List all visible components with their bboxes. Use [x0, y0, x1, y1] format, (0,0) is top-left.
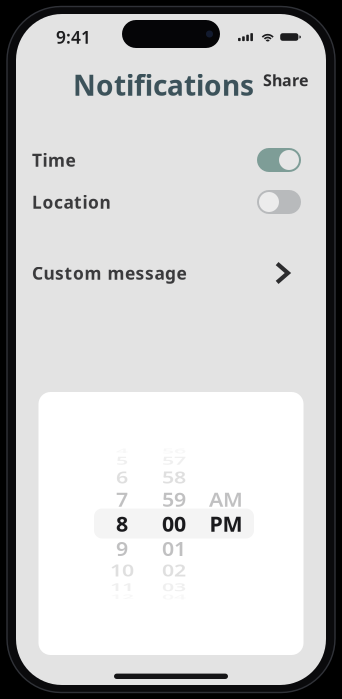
staticText: 4: [116, 436, 128, 465]
staticText: 59: [162, 485, 186, 513]
button[interactable]: Share: [260, 66, 312, 94]
staticText: 11: [110, 573, 134, 601]
staticText: 04: [162, 582, 186, 611]
staticText: Share: [263, 69, 309, 91]
staticText: 57: [162, 446, 186, 474]
staticText: 02: [162, 556, 186, 584]
staticText: 03: [162, 573, 186, 601]
staticText: 8: [116, 509, 128, 538]
staticText: 5: [116, 446, 128, 474]
staticText: 12: [110, 582, 134, 611]
staticText: 7: [116, 485, 128, 513]
staticText: 58: [162, 463, 186, 491]
staticText: 9: [116, 534, 128, 562]
staticText: AM: [209, 485, 243, 513]
staticText: 56: [162, 436, 186, 465]
staticText: Time: [32, 148, 75, 171]
staticText: 9:41: [56, 25, 91, 48]
button[interactable]: Location: [16, 187, 326, 217]
button[interactable]: Time: [16, 145, 326, 175]
button[interactable]: Custom message: [16, 258, 326, 288]
staticText: Custom message: [32, 261, 186, 284]
staticText: 01: [162, 534, 186, 562]
staticText: Notifications: [73, 66, 254, 104]
staticText: 6: [116, 463, 128, 491]
staticText: Location: [32, 190, 110, 213]
staticText: 10: [110, 556, 134, 584]
staticText: 00: [162, 509, 186, 538]
staticText: PM: [209, 509, 242, 538]
